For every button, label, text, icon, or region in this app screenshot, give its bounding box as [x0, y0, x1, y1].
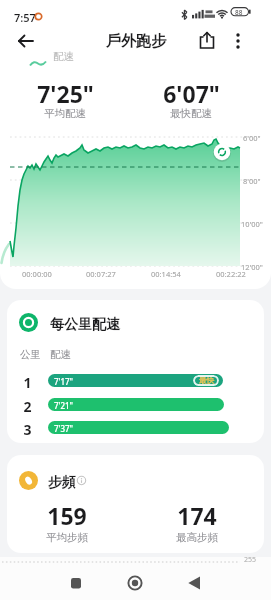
- staticText: 配速: [50, 348, 71, 361]
- button[interactable]: [193, 27, 221, 55]
- staticText: 最高步頻: [176, 531, 218, 544]
- staticText: 每公里配速: [50, 316, 120, 334]
- staticText: 159: [47, 500, 87, 531]
- staticText: 00:14:54: [151, 269, 181, 279]
- staticText: 戶外跑步: [106, 32, 166, 51]
- staticText: 平均配速: [44, 107, 86, 120]
- staticText: 1: [23, 373, 32, 392]
- staticText: 7'37": [54, 423, 74, 434]
- staticText: 12'00": [241, 262, 263, 272]
- staticText: 7:57: [14, 10, 36, 25]
- staticText: 最快配速: [170, 107, 212, 120]
- staticText: 6'00": [243, 133, 261, 143]
- staticText: 3: [23, 420, 32, 439]
- button[interactable]: [7, 455, 264, 553]
- staticText: 2: [23, 397, 32, 416]
- staticText: 00:00:00: [22, 269, 52, 279]
- staticText: 10'00": [241, 219, 263, 229]
- staticText: 7'25": [37, 78, 94, 109]
- staticText: 174: [177, 500, 217, 531]
- staticText: 00:22:22: [216, 269, 246, 279]
- staticText: 00:07:27: [86, 269, 116, 279]
- staticText: 6'07": [163, 78, 220, 109]
- staticText: 最快: [199, 376, 214, 385]
- staticText: 平均步頻: [46, 531, 88, 544]
- button[interactable]: [224, 27, 252, 55]
- staticText: 公里: [20, 348, 41, 361]
- staticText: 步頻: [48, 474, 76, 492]
- staticText: 7'21": [54, 400, 74, 411]
- staticText: 7'17": [54, 376, 74, 387]
- staticText: 255: [244, 555, 257, 565]
- button[interactable]: [7, 300, 264, 443]
- button[interactable]: [121, 569, 149, 597]
- button[interactable]: [180, 569, 208, 597]
- button[interactable]: [12, 27, 40, 55]
- button[interactable]: [62, 569, 90, 597]
- staticText: 8'00": [243, 176, 261, 186]
- staticText: 配速: [53, 50, 74, 63]
- staticText: 88: [235, 8, 243, 17]
